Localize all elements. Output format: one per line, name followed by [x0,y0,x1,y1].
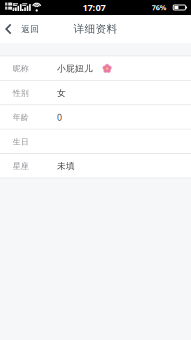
button[interactable]: 性别 [0,81,191,105]
staticText: 0 [57,111,62,123]
staticText: 女 [57,87,66,98]
button[interactable]: 星座 [0,154,191,178]
staticText: 小屁妞儿 [57,63,93,74]
button[interactable]: 返回 [0,16,47,41]
staticText: 未填 [57,161,75,172]
staticText: 星座 [13,161,29,171]
staticText: 性别 [13,88,29,98]
staticText: 76% [152,2,167,12]
staticText: 昵称 [13,64,29,74]
button[interactable]: 年龄 [0,105,191,130]
staticText: 返回 [21,23,39,34]
staticText: 生日 [13,137,29,147]
staticText: 17:07 [82,1,105,14]
staticText: 年龄 [13,112,29,122]
staticText: 详细资料 [73,22,117,36]
button[interactable]: 昵称 [0,56,191,81]
button[interactable]: 生日 [0,130,191,154]
